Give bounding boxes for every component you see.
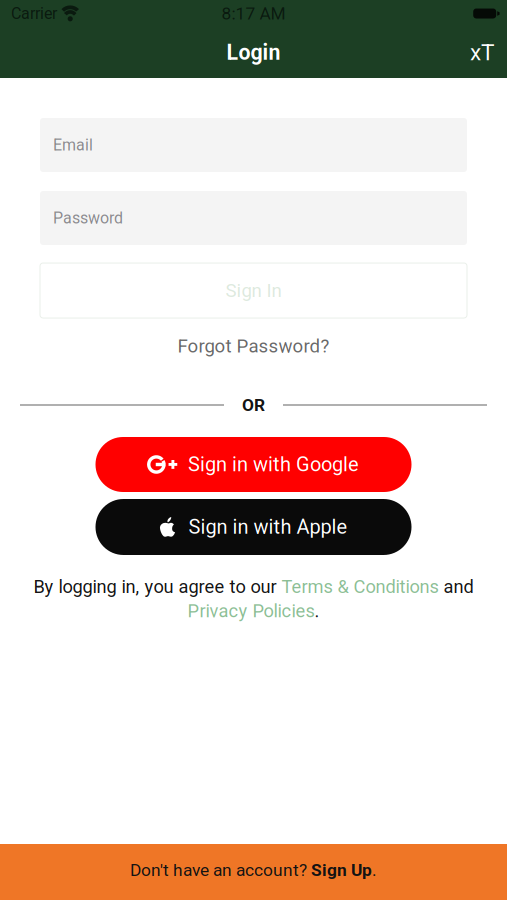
staticText: Carrier	[11, 4, 57, 23]
staticText: and	[438, 576, 473, 597]
staticText: Login	[226, 40, 280, 65]
staticText: Sign in with Google	[188, 453, 359, 476]
button[interactable]: Sign In	[40, 263, 467, 318]
staticText: Email	[53, 136, 93, 154]
staticText: Sign Up	[311, 860, 372, 880]
button[interactable]: Don't have an account?	[0, 844, 507, 900]
button[interactable]: Sign in with Google	[95, 437, 411, 492]
staticText: Terms & Conditions	[281, 576, 438, 597]
staticText: .	[314, 600, 319, 622]
button[interactable]: xT	[458, 30, 507, 74]
staticText: By logging in, you agree to our	[33, 576, 281, 597]
staticText: Privacy Policies	[187, 600, 314, 622]
staticText: Sign In	[225, 280, 281, 301]
staticText: Don't have an account?	[130, 860, 311, 880]
staticText: .	[372, 860, 377, 880]
button[interactable]: Forgot Password?	[177, 335, 329, 357]
button[interactable]: Sign in with Apple	[95, 499, 411, 555]
staticText: xT	[470, 39, 495, 66]
staticText: Password	[53, 209, 123, 227]
staticText: Sign in with Apple	[188, 515, 347, 539]
staticText: 8:17 AM	[221, 3, 285, 24]
staticText: Forgot Password?	[177, 335, 329, 357]
staticText: OR	[242, 395, 265, 415]
